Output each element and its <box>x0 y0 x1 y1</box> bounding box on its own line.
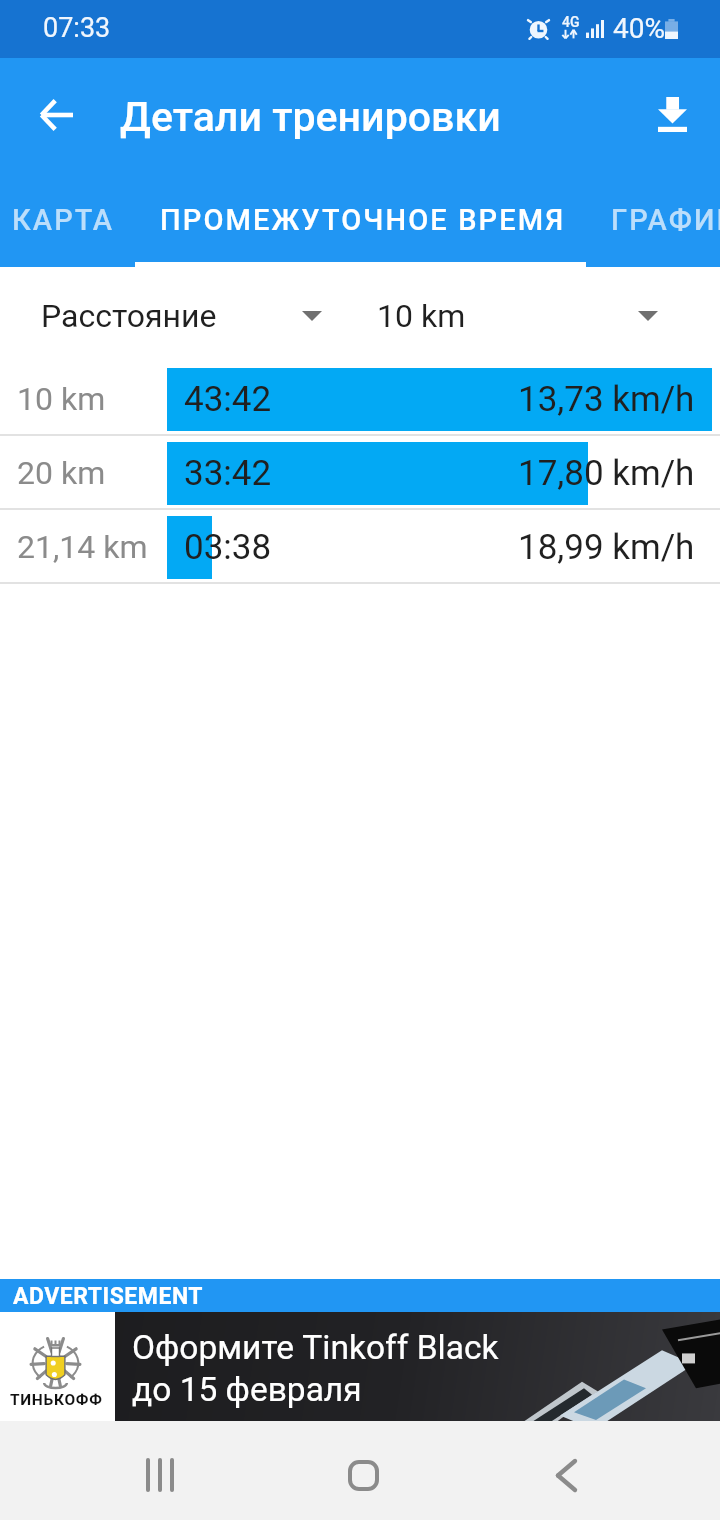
button[interactable]: Recent apps <box>120 1435 200 1515</box>
staticText: 20 km <box>17 454 106 492</box>
staticText: 43:42 <box>184 379 272 420</box>
staticText: 17,80 km/h <box>518 453 695 494</box>
button[interactable]: Back <box>16 75 96 155</box>
staticText: 18,99 km/h <box>518 527 695 568</box>
button[interactable]: Расстояние <box>0 267 350 362</box>
button[interactable]: 10 km <box>350 267 720 362</box>
staticText: 03:38 <box>184 527 272 568</box>
staticText: 10 km <box>17 380 106 418</box>
staticText: 40% <box>613 12 665 45</box>
staticText: 07:33 <box>43 12 111 44</box>
staticText: до 15 февраля <box>132 1370 362 1409</box>
staticText: 13,73 km/h <box>518 379 695 420</box>
button[interactable]: КАРТА <box>0 167 135 267</box>
staticText: ГРАФИКИ <box>611 203 720 237</box>
staticText: ТИНЬКОФФ <box>10 1391 103 1409</box>
button[interactable]: Back <box>526 1435 606 1515</box>
staticText: Расстояние <box>41 297 217 335</box>
button[interactable]: Home <box>323 1435 403 1515</box>
staticText: 21,14 km <box>17 528 148 566</box>
staticText: КАРТА <box>12 203 115 237</box>
staticText: Детали тренировки <box>120 93 501 141</box>
staticText: Оформите Tinkoff Black <box>132 1328 499 1367</box>
staticText: ПРОМЕЖУТОЧНОЕ ВРЕМЯ <box>160 203 566 237</box>
button[interactable]: ПРОМЕЖУТОЧНОЕ ВРЕМЯ <box>135 167 586 267</box>
staticText: ADVERTISEMENT <box>13 1283 204 1310</box>
staticText: 10 km <box>377 297 466 335</box>
staticText: 33:42 <box>184 453 272 494</box>
button[interactable]: ГРАФИКИ <box>586 167 720 267</box>
button[interactable]: ТИНЬКОФФ <box>0 1312 720 1421</box>
staticText: 4G <box>562 14 578 30</box>
button[interactable]: Download <box>636 78 708 150</box>
